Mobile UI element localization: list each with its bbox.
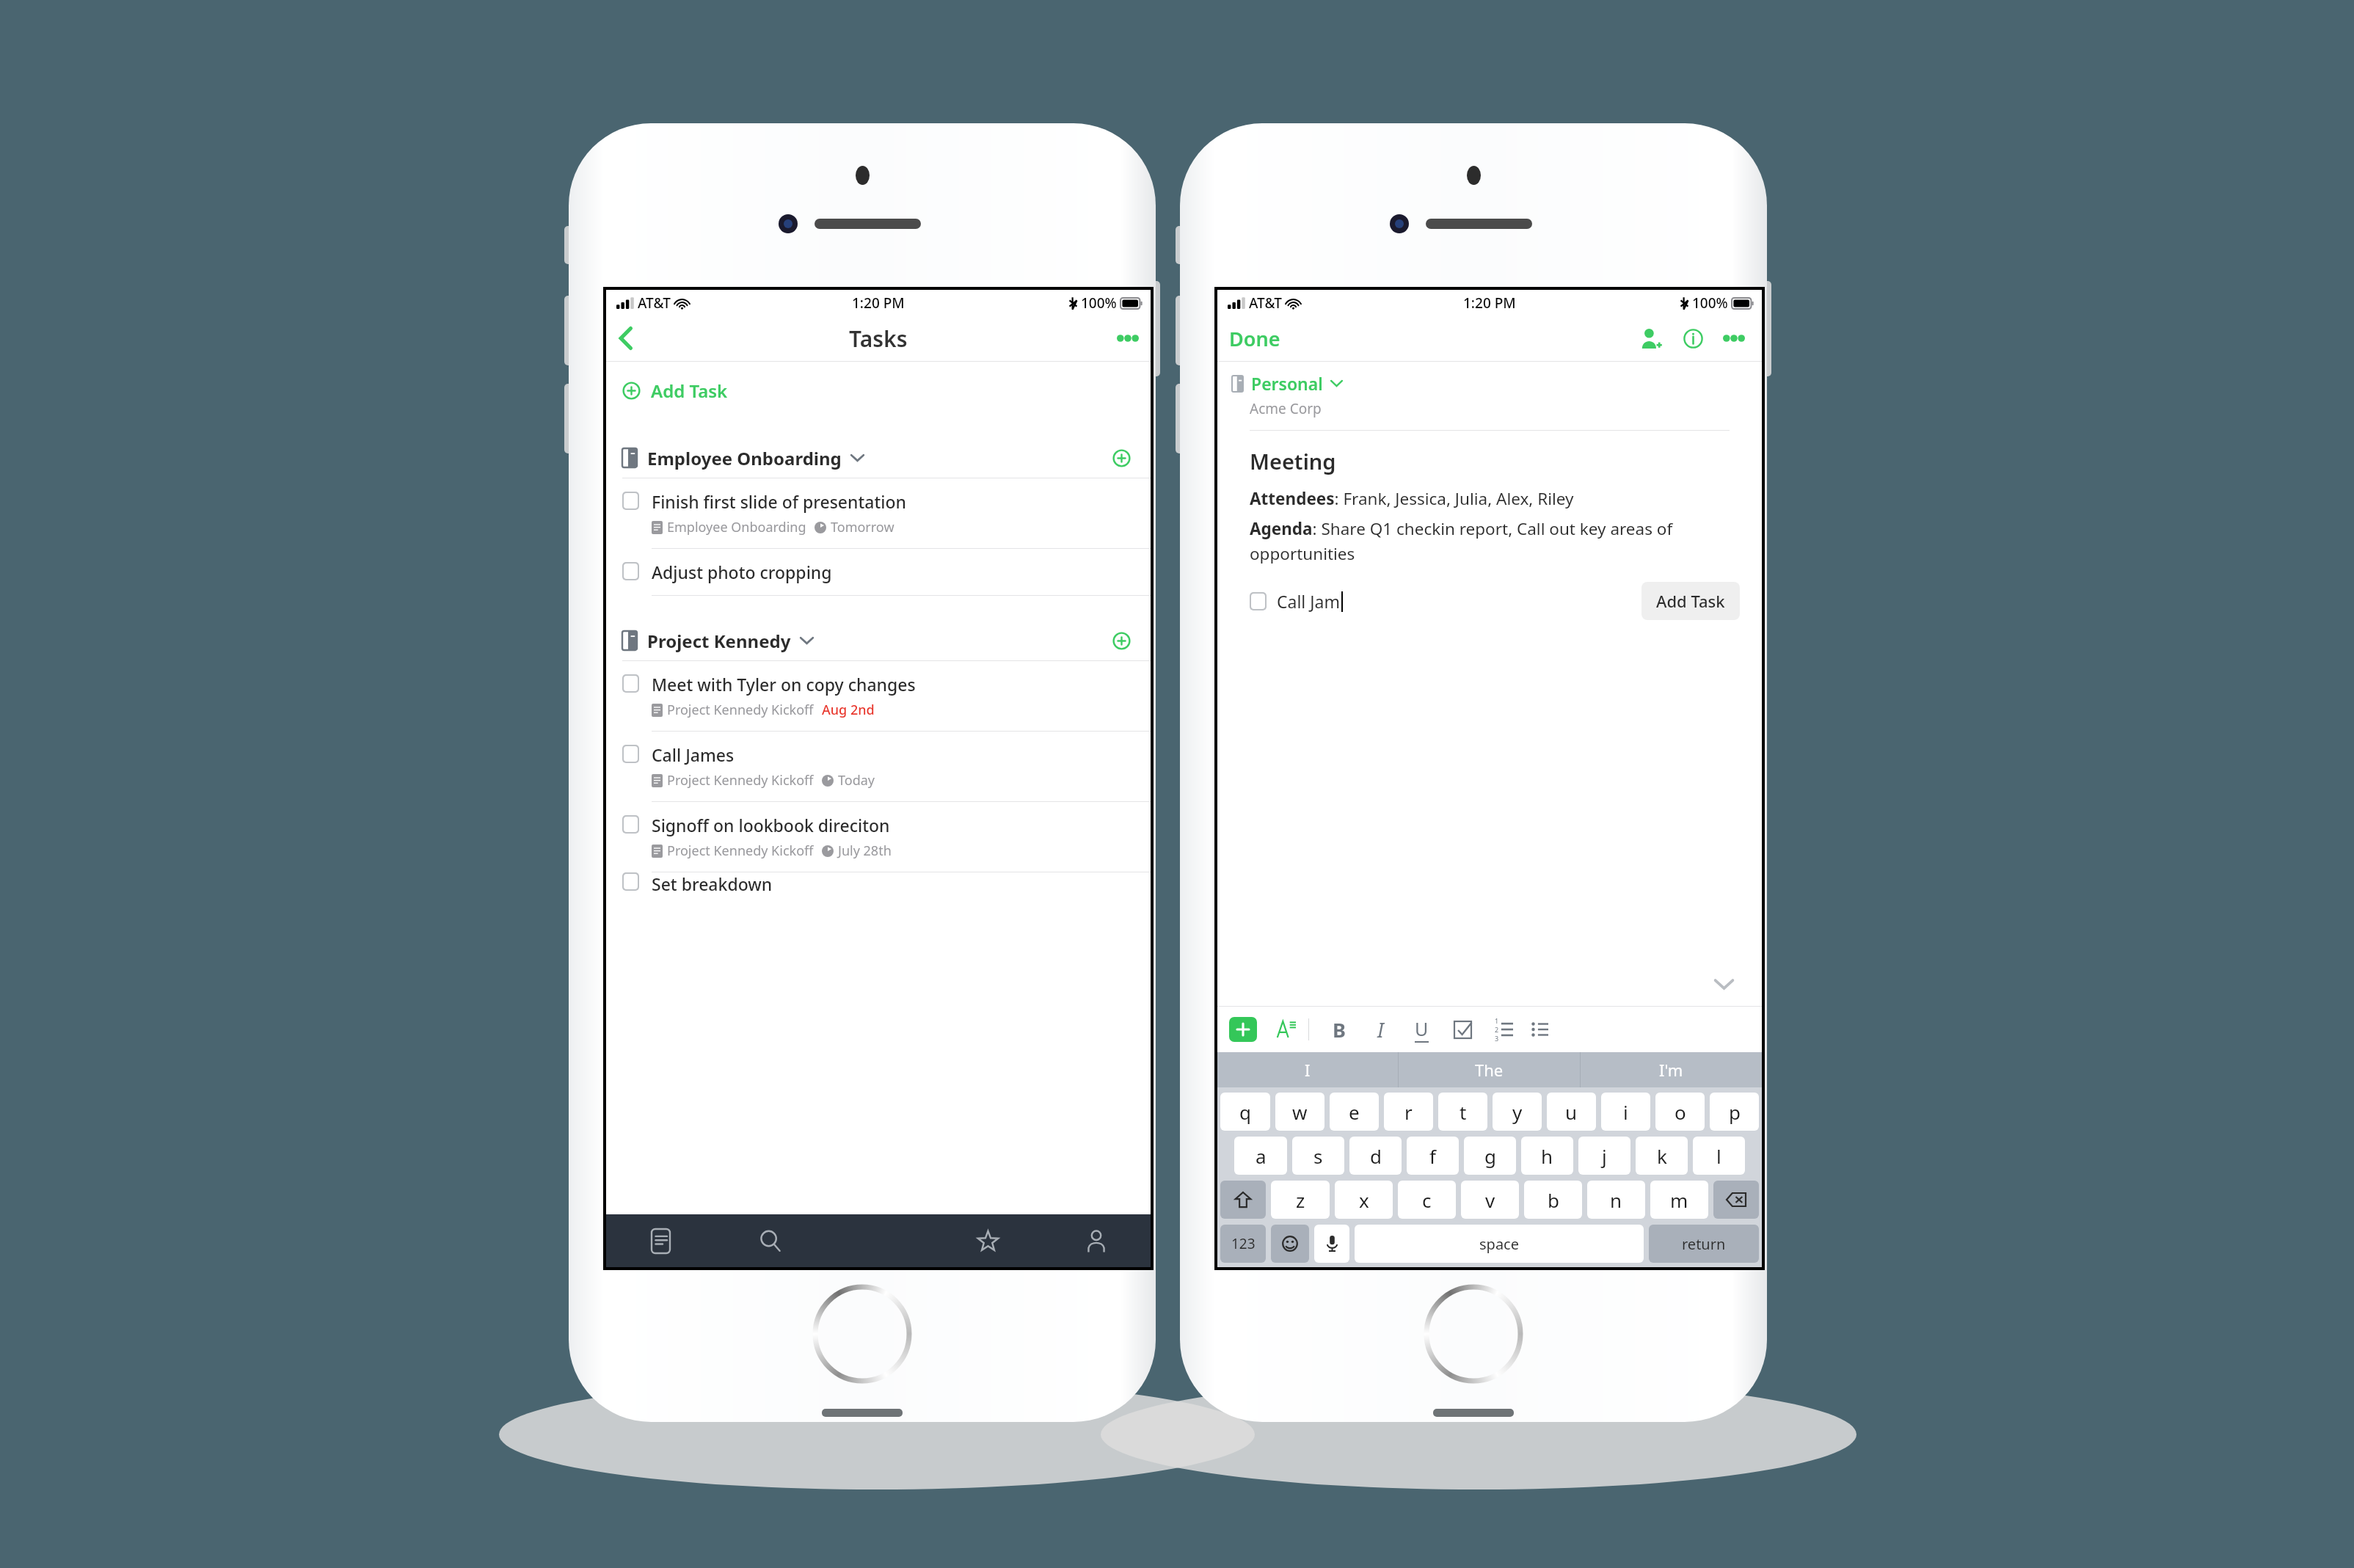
- button[interactable]: f: [1407, 1137, 1459, 1175]
- button[interactable]: y: [1493, 1093, 1542, 1131]
- button[interactable]: Notes: [606, 1214, 715, 1267]
- button[interactable]: Bulleted list: [1528, 1017, 1553, 1042]
- button[interactable]: Add task to Project Kennedy: [1107, 626, 1136, 655]
- staticText: Tasks: [849, 324, 908, 354]
- button[interactable]: Add task to Employee Onboarding: [1107, 443, 1136, 473]
- button[interactable]: Back: [606, 318, 646, 358]
- button[interactable]: Dictate: [1314, 1225, 1349, 1263]
- staticText: c: [1422, 1187, 1432, 1213]
- staticText: z: [1296, 1187, 1305, 1213]
- button[interactable]: Profile: [1042, 1214, 1151, 1267]
- staticText: n: [1610, 1187, 1622, 1213]
- staticText: Add Task: [651, 379, 728, 403]
- button[interactable]: The: [1399, 1052, 1580, 1087]
- button[interactable]: Add person: [1631, 318, 1672, 358]
- staticText: b: [1548, 1187, 1559, 1213]
- button[interactable]: Space: [1355, 1225, 1644, 1263]
- staticText: The: [1475, 1059, 1504, 1081]
- staticText: Set breakdown: [652, 872, 773, 895]
- button[interactable]: Text style: [1272, 1015, 1301, 1044]
- staticText: Agenda: Share Q1 checkin report, Call ou…: [1250, 517, 1737, 564]
- button[interactable]: i: [1601, 1093, 1650, 1131]
- button[interactable]: v: [1461, 1181, 1519, 1219]
- button[interactable]: Insert: [1229, 1017, 1257, 1042]
- staticText: 2: [1495, 1025, 1499, 1034]
- button[interactable]: Backspace: [1713, 1181, 1759, 1219]
- button[interactable]: e: [1330, 1093, 1379, 1131]
- staticText: Signoff on lookbook direciton: [652, 814, 890, 836]
- staticText: 1:20 PM: [1463, 293, 1516, 313]
- staticText: p: [1729, 1099, 1741, 1125]
- button[interactable]: Collapse: [1708, 968, 1740, 1000]
- button[interactable]: Signoff on lookbook direciton: [606, 802, 1151, 872]
- staticText: j: [1602, 1143, 1607, 1169]
- button[interactable]: More options: [1105, 318, 1151, 358]
- button[interactable]: t: [1438, 1093, 1487, 1131]
- button[interactable]: I'm: [1581, 1052, 1762, 1087]
- button[interactable]: Info: [1672, 318, 1713, 358]
- button[interactable]: Shift: [1220, 1181, 1266, 1219]
- button[interactable]: Italic: [1365, 1014, 1396, 1045]
- button[interactable]: Personal: [1232, 372, 1343, 395]
- button[interactable]: c: [1398, 1181, 1456, 1219]
- button[interactable]: I: [1217, 1052, 1398, 1087]
- staticText: Project Kennedy Kickoff: [667, 842, 814, 860]
- button[interactable]: Bold: [1324, 1014, 1355, 1045]
- staticText: y: [1512, 1099, 1523, 1125]
- staticText: space: [1479, 1234, 1519, 1254]
- staticText: Personal: [1251, 372, 1323, 395]
- button[interactable]: x: [1335, 1181, 1393, 1219]
- staticText: q: [1239, 1099, 1251, 1125]
- staticText: 3: [1495, 1034, 1499, 1043]
- button[interactable]: Numbered list: [1488, 1014, 1519, 1045]
- button[interactable]: p: [1710, 1093, 1759, 1131]
- staticText: f: [1429, 1143, 1436, 1169]
- button[interactable]: o: [1655, 1093, 1705, 1131]
- button[interactable]: Call James: [606, 732, 1151, 802]
- button[interactable]: Search: [715, 1214, 825, 1267]
- button[interactable]: Checklist: [1447, 1014, 1478, 1045]
- staticText: Done: [1229, 325, 1280, 352]
- button[interactable]: k: [1636, 1137, 1688, 1175]
- button[interactable]: Return: [1649, 1225, 1759, 1263]
- button[interactable]: w: [1275, 1093, 1324, 1131]
- button[interactable]: Underline: [1406, 1014, 1437, 1045]
- button[interactable]: Employee Onboarding: [606, 438, 1151, 478]
- button[interactable]: Emoji: [1271, 1225, 1309, 1263]
- button[interactable]: l: [1693, 1137, 1745, 1175]
- button[interactable]: Numbers: [1220, 1225, 1266, 1263]
- button[interactable]: m: [1650, 1181, 1708, 1219]
- button[interactable]: Project Kennedy: [606, 621, 1151, 660]
- staticText: Finish first slide of presentation: [652, 490, 906, 513]
- button[interactable]: d: [1349, 1137, 1402, 1175]
- button[interactable]: n: [1587, 1181, 1645, 1219]
- button[interactable]: Add Task: [1641, 582, 1740, 620]
- button[interactable]: s: [1292, 1137, 1344, 1175]
- button[interactable]: b: [1524, 1181, 1582, 1219]
- button[interactable]: j: [1578, 1137, 1630, 1175]
- button[interactable]: g: [1464, 1137, 1516, 1175]
- button[interactable]: q: [1220, 1093, 1270, 1131]
- staticText: t: [1460, 1099, 1467, 1125]
- button[interactable]: u: [1547, 1093, 1596, 1131]
- button[interactable]: a: [1234, 1137, 1287, 1175]
- button[interactable]: Favorites: [933, 1214, 1042, 1267]
- staticText: Tomorrow: [831, 518, 894, 536]
- button[interactable]: Finish first slide of presentation: [606, 478, 1151, 549]
- button[interactable]: Adjust photo cropping: [606, 549, 1151, 596]
- staticText: v: [1485, 1187, 1495, 1213]
- staticText: Project Kennedy Kickoff: [667, 771, 814, 790]
- button[interactable]: Set breakdown: [606, 872, 1151, 902]
- staticText: Employee Onboarding: [647, 446, 842, 470]
- staticText: l: [1716, 1143, 1721, 1169]
- button[interactable]: r: [1384, 1093, 1433, 1131]
- button[interactable]: Meet with Tyler on copy changes: [606, 661, 1151, 732]
- staticText: Call Jam: [1277, 590, 1340, 613]
- staticText: r: [1404, 1099, 1413, 1125]
- button[interactable]: Done: [1217, 318, 1288, 358]
- button[interactable]: Add Task: [606, 362, 1151, 419]
- button[interactable]: More options: [1713, 318, 1754, 358]
- button[interactable]: h: [1521, 1137, 1573, 1175]
- button[interactable]: z: [1271, 1181, 1330, 1219]
- staticText: 1: [1495, 1016, 1499, 1025]
